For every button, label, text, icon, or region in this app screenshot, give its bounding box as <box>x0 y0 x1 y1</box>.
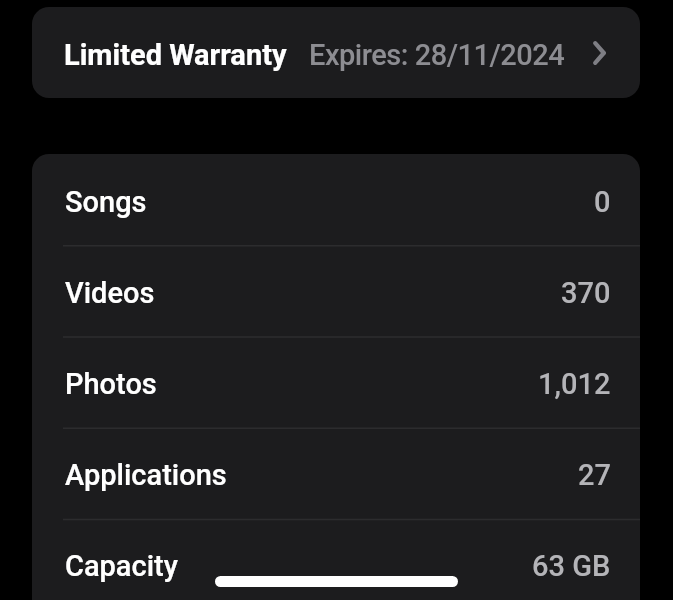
staticText: Photos <box>65 367 157 401</box>
staticText: Expires: 28/11/2024 <box>309 38 565 72</box>
button[interactable]: Capacity <box>32 518 640 600</box>
staticText: Applications <box>65 458 227 492</box>
other: Warranty details <box>583 37 615 69</box>
staticText: 0 <box>594 185 611 219</box>
button[interactable]: Limited Warranty <box>32 7 640 98</box>
staticText: Songs <box>65 185 147 219</box>
staticText: 27 <box>578 458 611 492</box>
button[interactable]: Videos <box>32 245 640 336</box>
staticText: Capacity <box>65 549 178 583</box>
staticText: 370 <box>561 276 611 310</box>
staticText: 1,012 <box>538 367 611 401</box>
button[interactable]: Songs <box>32 154 640 245</box>
staticText: Videos <box>65 276 155 310</box>
staticText: 63 GB <box>532 549 611 583</box>
staticText: Limited Warranty <box>64 38 287 72</box>
button[interactable]: Applications <box>32 427 640 518</box>
button[interactable]: Photos <box>32 336 640 427</box>
